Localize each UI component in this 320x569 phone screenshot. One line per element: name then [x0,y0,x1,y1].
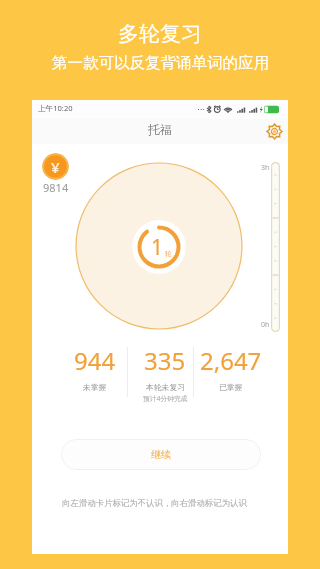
staticText: 9814 [43,180,69,195]
staticText: 向左滑动卡片标记为不认识，向右滑动标记为认识 [62,498,247,509]
staticText: 轮 [165,250,172,258]
staticText: 未掌握 [83,382,107,392]
staticText: ¥ [51,157,60,177]
staticText: 1 [151,233,164,262]
staticText: 托福 [148,122,172,137]
button[interactable]: 继续 [61,439,261,470]
button[interactable]: 2,647 [199,344,263,394]
staticText: 0h [261,320,270,330]
staticText: 继续 [151,448,171,461]
button[interactable]: 335 [133,344,197,403]
staticText: 335 [144,344,186,377]
staticText: 本轮未复习 [146,382,185,392]
staticText: 944 [74,344,116,377]
button[interactable]: Settings [263,120,285,142]
button[interactable]: 944 [63,344,127,394]
staticText: 已掌握 [219,382,243,392]
staticText: 2,647 [200,344,262,377]
staticText: 预计4分钟完成 [143,394,188,403]
staticText: 3h [261,163,270,173]
staticText: 多轮复习 [118,21,202,47]
button[interactable]: Coins [42,153,69,180]
staticText: 上午10:20 [38,103,73,113]
staticText: 第一款可以反复背诵单词的应用 [52,53,269,73]
